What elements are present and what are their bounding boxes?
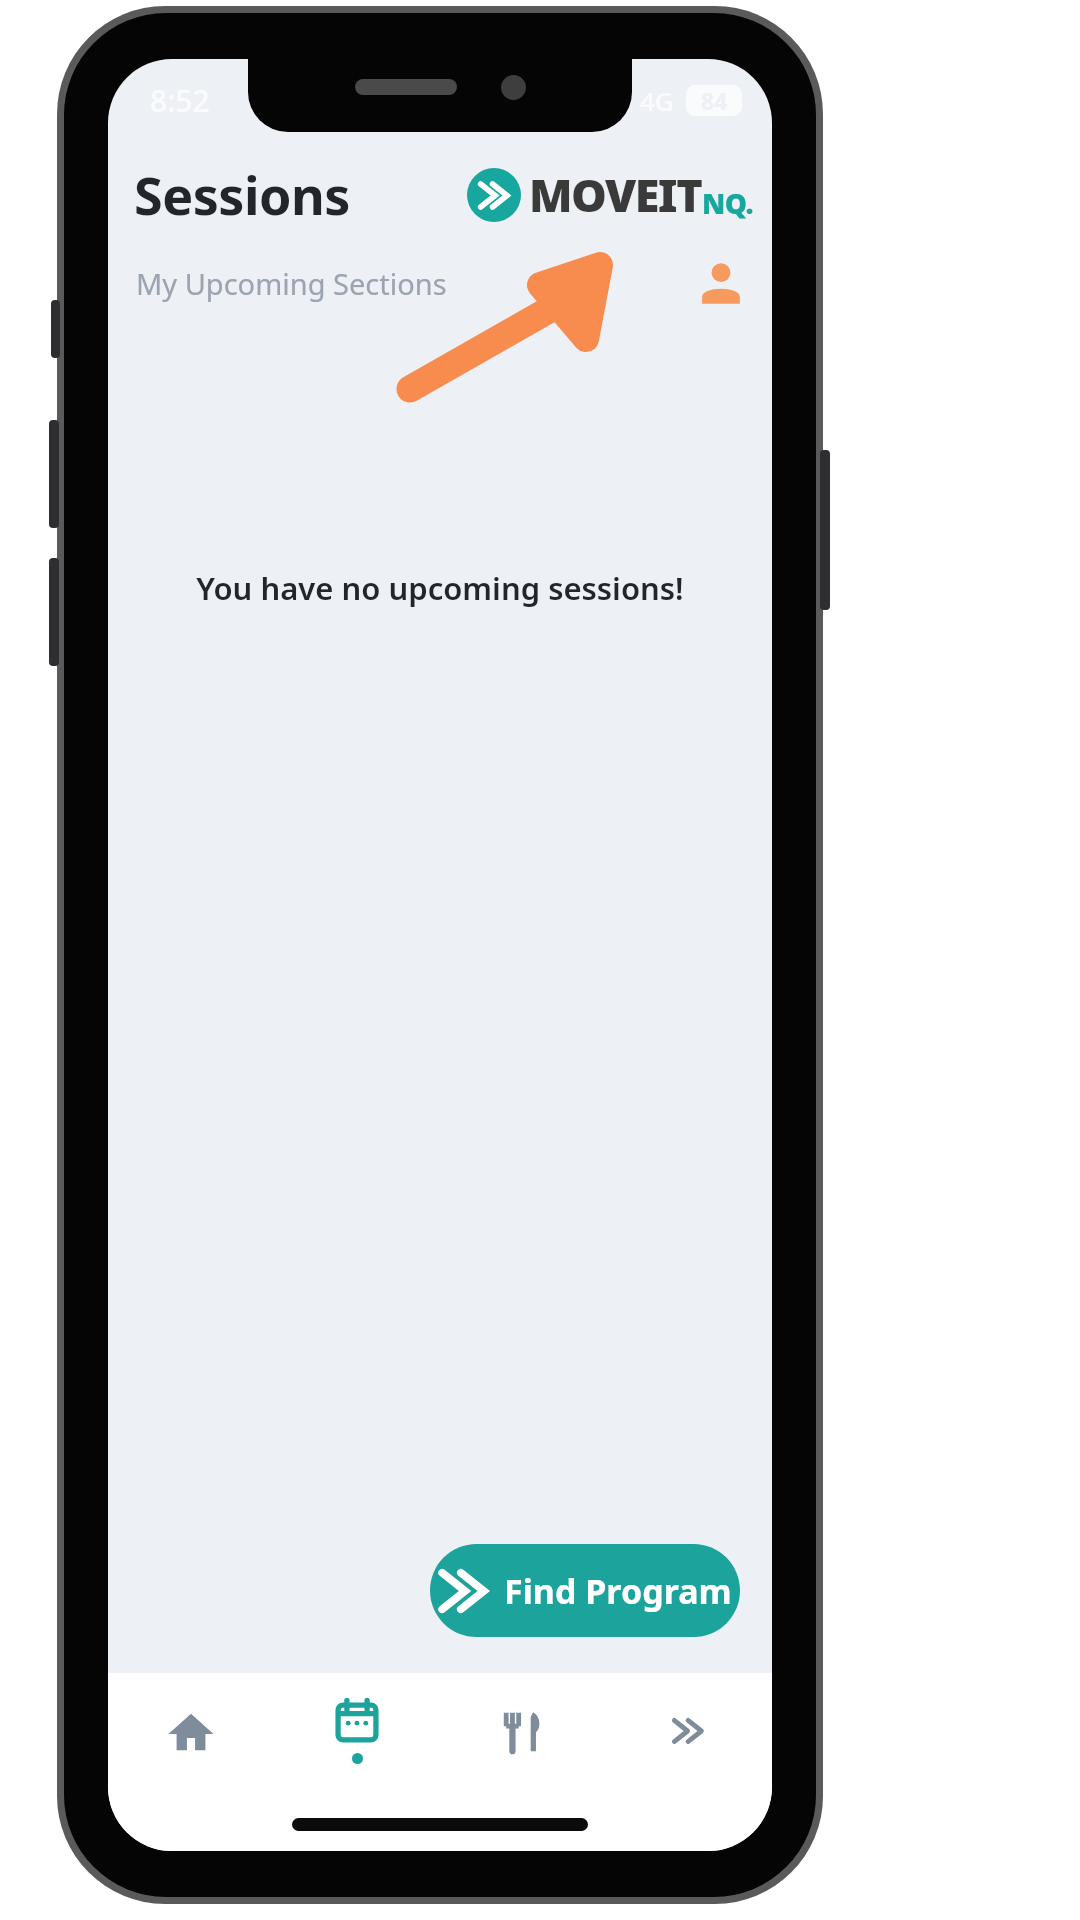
staticText: NQ. [702, 184, 754, 222]
staticText: My Upcoming Sections [136, 264, 447, 303]
button[interactable]: Home [108, 1673, 274, 1789]
staticText: 84 [701, 85, 728, 116]
button[interactable]: Profile [692, 254, 750, 312]
staticText: Find Program [504, 1568, 732, 1614]
button[interactable]: More [606, 1673, 772, 1789]
button[interactable]: Find Program [430, 1544, 740, 1637]
staticText: 8:52 [150, 80, 210, 121]
staticText: 4G [640, 83, 674, 118]
staticText: Sessions [134, 159, 350, 230]
button[interactable]: Sessions [274, 1673, 440, 1789]
staticText: You have no upcoming sessions! [196, 567, 684, 609]
button[interactable]: Nutrition [440, 1673, 606, 1789]
staticText: MOVEIT [529, 164, 702, 225]
